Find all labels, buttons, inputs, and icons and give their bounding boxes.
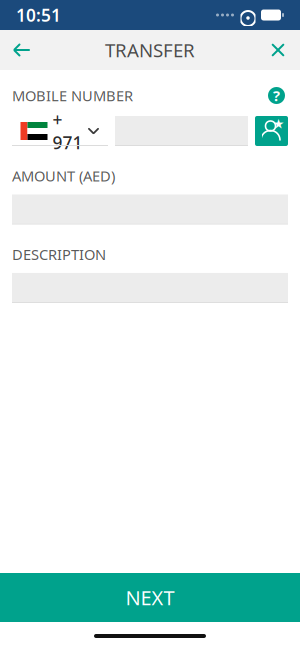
button[interactable]: Back (0, 30, 44, 70)
staticText: DESCRIPTION (12, 244, 106, 264)
staticText: NEXT (125, 584, 174, 611)
staticText: AMOUNT (AED) (12, 166, 115, 185)
staticText: ★ (272, 116, 284, 131)
staticText: 10:51 (16, 3, 61, 26)
staticText: + 971 (52, 108, 82, 154)
staticText: TRANSFER (105, 38, 195, 62)
button[interactable]: NEXT (0, 573, 300, 622)
button[interactable]: Close (256, 30, 300, 70)
button[interactable]: Help (265, 84, 288, 107)
button[interactable]: Choose contact (255, 116, 288, 146)
staticText: MOBILE NUMBER (12, 86, 133, 105)
staticText: ? (273, 86, 280, 105)
button[interactable]: + 971 (12, 116, 108, 146)
